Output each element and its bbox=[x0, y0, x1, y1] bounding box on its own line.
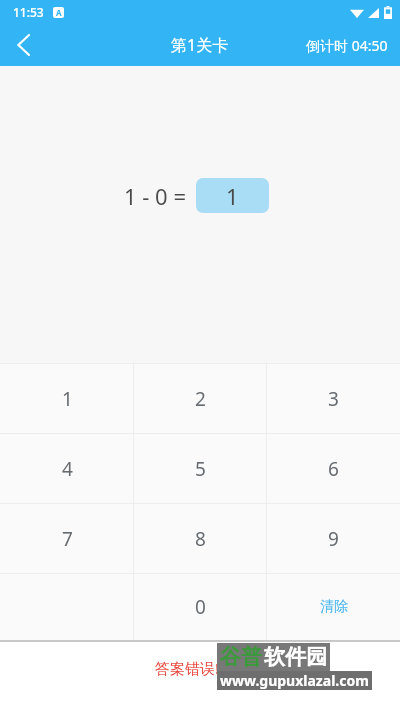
staticText: 9 bbox=[328, 526, 339, 552]
staticText: 软件园 bbox=[264, 644, 327, 670]
staticText: www.gupuxlazal.com bbox=[220, 671, 369, 690]
staticText: 1 - 0 = bbox=[124, 181, 186, 211]
staticText: 1 bbox=[226, 181, 239, 211]
staticText: 8 bbox=[195, 526, 206, 552]
staticText: 倒计时 04:50 bbox=[306, 36, 388, 55]
button[interactable]: 1 bbox=[0, 364, 134, 433]
staticText: 第1关卡 bbox=[171, 34, 229, 56]
button[interactable]: 2 bbox=[134, 364, 267, 433]
staticText: 2 bbox=[195, 386, 206, 412]
staticText: 答案错误! bbox=[155, 658, 220, 678]
button[interactable]: 5 bbox=[134, 434, 267, 503]
staticText: 7 bbox=[62, 526, 73, 552]
button[interactable]: 0 bbox=[134, 574, 267, 640]
button[interactable]: 6 bbox=[267, 434, 400, 503]
staticText: 6 bbox=[328, 456, 339, 482]
staticText: 4 bbox=[62, 456, 73, 482]
button[interactable]: 4 bbox=[0, 434, 134, 503]
button[interactable]: 9 bbox=[267, 504, 400, 573]
staticText: 0 bbox=[195, 594, 206, 620]
button[interactable]: 1 bbox=[196, 178, 269, 213]
button[interactable]: 7 bbox=[0, 504, 134, 573]
staticText: A bbox=[56, 7, 62, 18]
staticText: 清除 bbox=[320, 598, 348, 616]
staticText: 11:53 bbox=[13, 4, 44, 20]
button[interactable]: Back bbox=[0, 24, 48, 66]
staticText: 3 bbox=[328, 386, 339, 412]
staticText: 谷普 bbox=[220, 644, 262, 670]
staticText: 5 bbox=[195, 456, 206, 482]
button[interactable]: 清除 bbox=[267, 574, 400, 640]
button[interactable]: 8 bbox=[134, 504, 267, 573]
button[interactable]: 3 bbox=[267, 364, 400, 433]
staticText: 1 bbox=[62, 386, 73, 412]
